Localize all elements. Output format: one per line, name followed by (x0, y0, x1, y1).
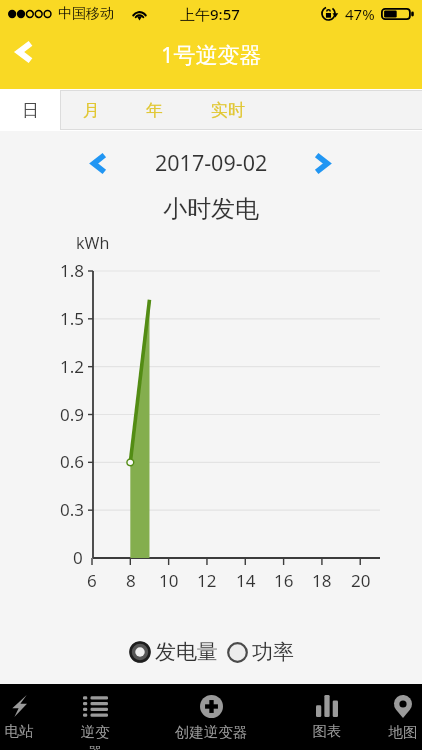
button[interactable]: Previous day (81, 145, 117, 181)
button[interactable]: Back (1, 29, 47, 75)
staticText: 47% (345, 4, 375, 24)
staticText: 1号逆变器 (161, 39, 262, 69)
staticText: 1.5 (60, 307, 85, 330)
staticText: 12 (197, 569, 217, 592)
staticText: 10 (159, 569, 179, 592)
button[interactable]: 逆变器 (57, 684, 133, 750)
staticText: 创建逆变器 (173, 723, 249, 741)
button[interactable]: 地图 (365, 684, 422, 750)
button[interactable]: 电站 (0, 684, 57, 750)
staticText: 月 (83, 100, 100, 121)
button[interactable]: 图表 (289, 684, 365, 750)
staticText: 上午9:57 (180, 4, 240, 24)
staticText: 6 (87, 569, 97, 592)
staticText: kWh (76, 232, 110, 254)
staticText: 20 (351, 569, 371, 592)
staticText: 18 (312, 569, 332, 592)
staticText: 年 (146, 100, 163, 121)
staticText: 0 (73, 546, 83, 569)
button[interactable]: 年 (123, 89, 185, 131)
staticText: 0.3 (60, 498, 85, 521)
staticText: 功率 (252, 639, 294, 665)
staticText: 0.6 (60, 450, 85, 473)
button[interactable]: 创建逆变器 (173, 684, 249, 750)
button[interactable]: 功率 (227, 639, 294, 665)
staticText: 中国移动 (58, 5, 114, 23)
staticText: 逆变器 (80, 723, 110, 750)
button[interactable]: Next day (304, 145, 340, 181)
staticText: 发电量 (155, 639, 218, 665)
staticText: 1.8 (60, 259, 85, 282)
staticText: 1.2 (60, 355, 85, 378)
staticText: 电站 (0, 722, 41, 740)
staticText: 16 (274, 569, 294, 592)
button[interactable]: 月 (60, 89, 123, 131)
staticText: 地图 (381, 723, 422, 741)
staticText: 8 (126, 569, 136, 592)
staticText: 2017-09-02 (155, 148, 268, 177)
staticText: 日 (22, 100, 39, 121)
staticText: 实时 (211, 100, 245, 121)
button[interactable]: 日 (0, 89, 60, 131)
button[interactable]: 实时 (185, 89, 270, 131)
staticText: 14 (236, 569, 256, 592)
button[interactable]: 发电量 (129, 639, 218, 665)
staticText: 0.9 (60, 403, 85, 426)
staticText: 图表 (305, 722, 349, 740)
staticText: 小时发电 (163, 194, 259, 224)
